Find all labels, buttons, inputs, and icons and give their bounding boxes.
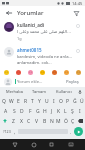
button[interactable]: U [43,96,50,106]
staticText: anlamadim. cok... [17,60,52,65]
button[interactable]: M [55,116,62,126]
button[interactable]: Q [0,96,8,106]
button[interactable]: B [41,116,48,126]
button[interactable]: Voice input [76,87,83,96]
staticText: F [29,108,32,115]
button[interactable]: J [48,106,55,116]
button[interactable]: ?123 [2,126,12,137]
button[interactable]: Ç [69,116,76,126]
button[interactable]: Back [10,140,19,149]
staticText: J [51,108,53,115]
button[interactable]: Ü [78,96,85,106]
staticText: S [13,108,16,115]
staticText: I [79,108,81,115]
button[interactable]: Like [74,47,81,54]
staticText: B [43,118,47,125]
button[interactable]: Filter [71,8,81,18]
button[interactable]: P [64,96,71,106]
staticText: Y [38,98,41,105]
button[interactable]: Send [74,127,83,136]
staticText: 14:45 [72,1,83,6]
button[interactable]: C [25,116,33,126]
button[interactable]: Emoji [3,69,10,76]
button[interactable]: Emoji [63,69,70,76]
button[interactable]: I [76,106,83,116]
staticText: Ç [71,118,75,125]
button[interactable]: W [8,96,15,106]
staticText: E [17,98,20,105]
button[interactable]: Home [29,140,38,149]
button[interactable]: L [62,106,69,116]
button[interactable]: S [10,106,18,116]
staticText: Ü [80,98,84,105]
button[interactable]: O [57,96,64,106]
staticText: P [66,98,70,105]
button[interactable]: Paylaş [64,78,81,86]
staticText: L [64,108,67,115]
button[interactable]: D [18,106,26,116]
button[interactable]: Merhaba [2,87,26,96]
staticText: M [56,118,61,125]
button[interactable]: V [33,116,41,126]
button[interactable]: Kullanıcı [51,87,76,96]
staticText: Yorumlar [17,9,44,17]
staticText: ahmet0815 [17,47,42,53]
button[interactable]: Emoji [39,69,46,76]
staticText: Ö [64,118,68,125]
staticText: R [24,98,28,105]
staticText: T [31,98,34,105]
staticText: K [57,108,61,115]
button[interactable]: Shift [0,116,9,126]
button[interactable]: H [41,106,48,116]
button[interactable]: Backspace [76,116,85,126]
staticText: U [45,98,49,105]
staticText: Yorum ekle... [17,79,64,85]
button[interactable]: Tamam [26,87,51,96]
button[interactable]: Like [74,22,81,29]
staticText: C [27,118,31,125]
button[interactable]: Back [4,8,14,18]
button[interactable]: X [17,116,25,126]
button[interactable]: Y [36,96,43,106]
button[interactable]: Ğ [71,96,78,106]
button[interactable]: Ş [69,106,76,116]
button[interactable]: kullanici_adi [0,19,85,44]
button[interactable]: Emoji [27,69,34,76]
staticText: I [53,98,55,105]
button[interactable]: Recents [47,140,56,149]
staticText: Z [12,118,15,125]
button[interactable]: Emoji [15,69,22,76]
button[interactable]: Keyboard [66,140,75,149]
staticText: D [20,108,24,115]
button[interactable]: Ö [62,116,69,126]
staticText: X [20,118,23,125]
button[interactable]: K [55,106,62,116]
button[interactable]: Emoji [75,69,82,76]
button[interactable]: F [26,106,34,116]
staticText: Tamam [32,89,46,94]
staticText: W [9,98,14,105]
button[interactable]: Emoji [51,69,58,76]
button[interactable]: T [29,96,36,106]
button[interactable]: ahmet0815 [0,44,85,68]
button[interactable]: R [22,96,29,106]
staticText: Merhaba [6,89,23,94]
button[interactable]: Comma [12,126,18,137]
staticText: kardesim, videoda ne anlatmak istedigini [17,54,72,60]
button[interactable]: A [2,106,10,116]
staticText: Q [2,98,6,105]
staticText: ?123 [3,129,11,134]
staticText: . [70,129,72,135]
button[interactable]: I [50,96,57,106]
staticText: G [36,108,40,115]
staticText: Kullanıcı [56,89,72,94]
button[interactable]: N [48,116,55,126]
staticText: Ğ [73,98,77,105]
button[interactable]: Z [9,116,17,126]
button[interactable]: Period [68,126,74,137]
staticText: , [14,129,16,135]
button[interactable]: G [34,106,41,116]
staticText: H [43,108,47,115]
button[interactable]: E [15,96,22,106]
